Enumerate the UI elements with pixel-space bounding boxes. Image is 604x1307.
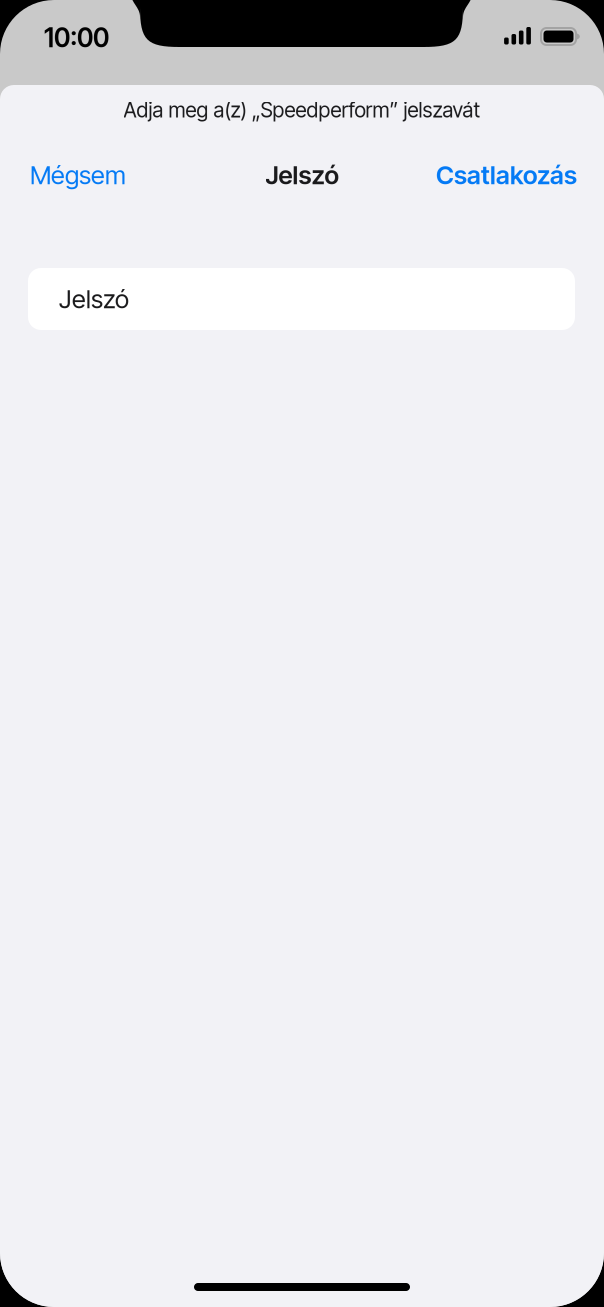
staticText: Mégsem <box>30 160 126 190</box>
staticText: Jelszó <box>265 160 338 190</box>
button[interactable]: Mégsem <box>30 158 150 192</box>
staticText: Jelszó <box>59 284 129 314</box>
staticText: Csatlakozás <box>436 160 577 190</box>
staticText: Adja meg a(z) „Speedperform” jelszavát <box>123 97 480 122</box>
button[interactable]: Jelszó <box>28 268 575 330</box>
staticText: 10:00 <box>44 22 109 53</box>
button[interactable]: Csatlakozás <box>432 158 577 192</box>
